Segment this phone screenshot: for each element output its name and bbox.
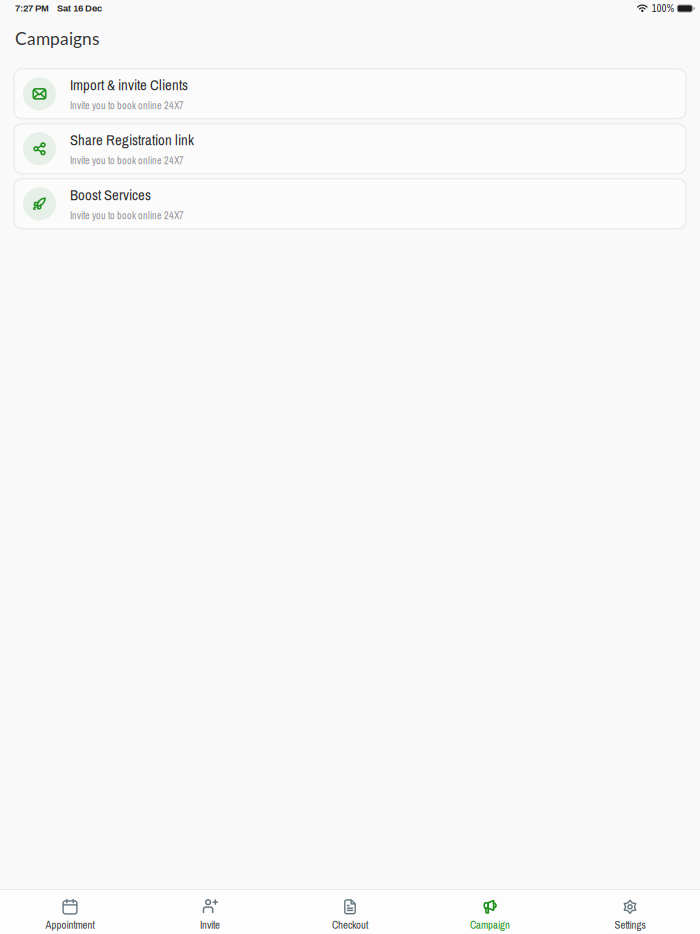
staticText: Invite — [200, 918, 220, 932]
staticText: Campaign — [470, 918, 510, 932]
staticText: 7:27 PM — [15, 3, 49, 14]
button[interactable]: Appointment — [0, 886, 140, 934]
staticText: Checkout — [332, 918, 368, 932]
staticText: Sat 16 Dec — [57, 3, 102, 14]
button[interactable]: Share Registration link — [14, 124, 686, 174]
staticText: 100% — [652, 2, 674, 15]
staticText: Invite you to book online 24X7 — [70, 99, 184, 112]
staticText: Invite you to book online 24X7 — [70, 154, 184, 167]
staticText: Share Registration link — [70, 130, 194, 150]
staticText: Campaigns — [15, 28, 100, 49]
staticText: Boost Services — [70, 185, 151, 205]
staticText: Import & invite Clients — [70, 75, 188, 95]
button[interactable]: Checkout — [280, 886, 420, 934]
staticText: Appointment — [45, 918, 94, 932]
staticText: Settings — [614, 918, 645, 932]
button[interactable]: Campaign — [420, 886, 560, 934]
button[interactable]: Import & invite Clients — [14, 69, 686, 119]
button[interactable]: Invite — [140, 886, 280, 934]
button[interactable]: Settings — [560, 886, 700, 934]
staticText: Invite you to book online 24X7 — [70, 209, 184, 222]
button[interactable]: Boost Services — [14, 179, 686, 229]
